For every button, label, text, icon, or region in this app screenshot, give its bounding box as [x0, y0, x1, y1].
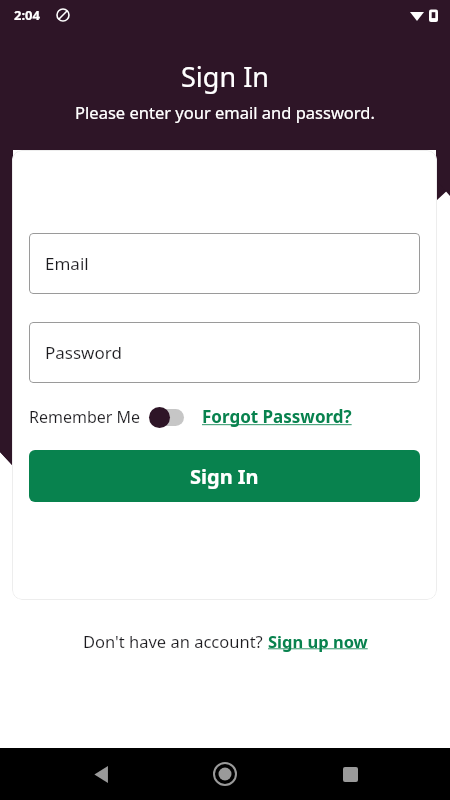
button[interactable]: Remember Me — [29, 406, 184, 428]
button[interactable]: Sign up now — [268, 630, 368, 652]
staticText: Sign up now — [268, 630, 368, 652]
staticText: 2:04 — [14, 6, 40, 24]
staticText: Email — [45, 252, 89, 275]
staticText: Please enter your email and password. — [75, 101, 375, 123]
staticText: Forgot Password? — [202, 405, 352, 428]
button[interactable]: Password — [29, 322, 420, 383]
button[interactable]: Email — [29, 233, 420, 294]
button[interactable]: Back — [77, 750, 125, 798]
staticText: Sign In — [190, 463, 259, 490]
staticText: Sign In — [181, 58, 269, 95]
staticText: Don't have an account? — [83, 630, 268, 652]
button[interactable]: Sign In — [29, 450, 420, 502]
staticText: Password — [45, 341, 122, 364]
button[interactable]: Recent apps — [326, 750, 374, 798]
button[interactable]: Forgot Password? — [202, 405, 352, 428]
staticText: Remember Me — [29, 406, 141, 428]
button[interactable]: Home — [201, 750, 249, 798]
